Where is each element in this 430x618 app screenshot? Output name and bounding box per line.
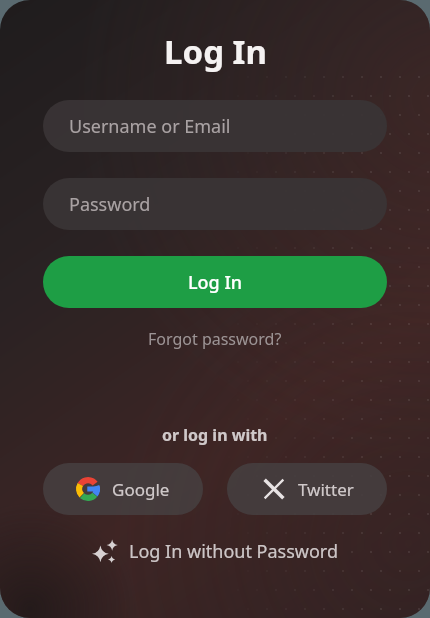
button[interactable]: Log In [43,256,387,308]
staticText: Google [112,478,170,501]
staticText: Twitter [298,478,354,501]
staticText: Log In without Password [129,539,338,564]
button[interactable]: Twitter [227,463,387,515]
staticText: Username or Email [69,114,231,139]
staticText: Forgot password? [148,328,282,350]
staticText: Password [69,192,151,217]
button[interactable]: Google [43,463,203,515]
button[interactable]: Passwordless login [82,531,348,571]
staticText: Log In [188,270,243,295]
staticText: or log in with [162,424,268,446]
button[interactable]: Username or Email [43,100,387,152]
button[interactable]: Forgot password? [140,324,290,354]
button[interactable]: Password [43,178,387,230]
staticText: Log In [164,29,267,74]
other: Passwordless login [92,537,120,565]
